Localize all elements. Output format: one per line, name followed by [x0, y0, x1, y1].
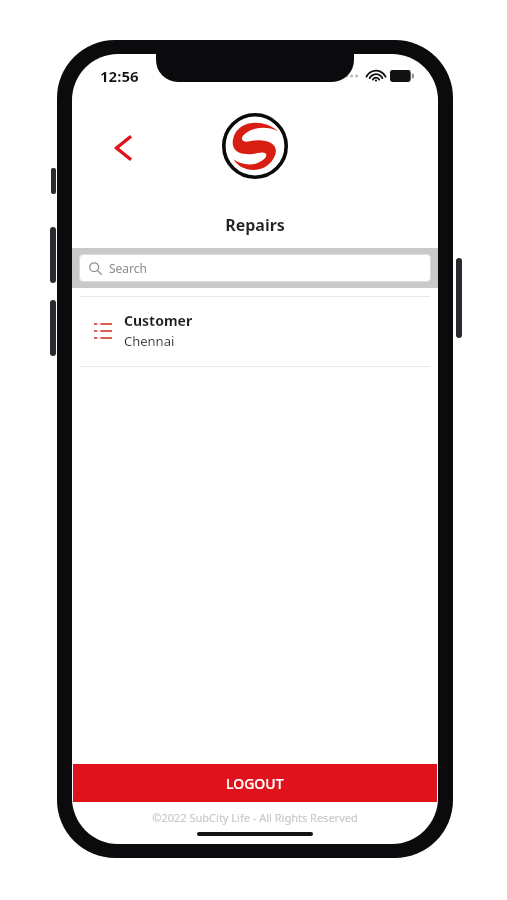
staticText: Chennai [124, 332, 175, 350]
button[interactable]: Search [79, 254, 431, 282]
button[interactable]: Back [102, 126, 146, 170]
button[interactable]: LOGOUT [73, 764, 437, 802]
button[interactable]: SubCity Life logo [221, 112, 289, 180]
staticText: Repairs [225, 214, 285, 236]
staticText: Customer [124, 311, 193, 330]
staticText: ©2022 SubCity Life - All Rights Reserved [152, 810, 358, 825]
staticText: 12:56 [100, 66, 139, 86]
staticText: Search [109, 260, 147, 276]
staticText: LOGOUT [226, 774, 284, 793]
button[interactable]: Customer [72, 297, 438, 366]
